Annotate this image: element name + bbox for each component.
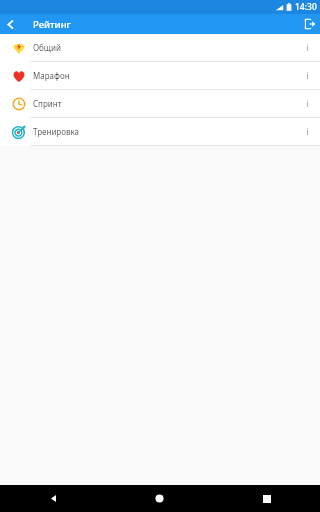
- button[interactable]: Тренировка: [0, 118, 320, 146]
- staticText: i: [306, 42, 309, 54]
- staticText: Рейтинг: [33, 18, 71, 31]
- staticText: Тренировка: [33, 126, 80, 137]
- button[interactable]: Info: [298, 121, 316, 143]
- button[interactable]: Марафон: [0, 62, 320, 90]
- button[interactable]: Log out: [300, 14, 320, 34]
- button[interactable]: Info: [298, 37, 316, 59]
- button[interactable]: Back: [0, 485, 106, 512]
- button[interactable]: Recent apps: [213, 485, 320, 512]
- staticText: i: [306, 70, 309, 82]
- staticText: 14:30: [295, 1, 317, 13]
- button[interactable]: Спринт: [0, 90, 320, 118]
- button[interactable]: Home: [106, 485, 213, 512]
- staticText: i: [306, 126, 309, 138]
- button[interactable]: Общий: [0, 34, 320, 62]
- staticText: Марафон: [33, 70, 70, 81]
- staticText: Спринт: [33, 98, 62, 109]
- button[interactable]: Info: [298, 65, 316, 87]
- staticText: Общий: [33, 42, 61, 53]
- button[interactable]: Back: [0, 14, 20, 34]
- staticText: i: [306, 98, 309, 110]
- button[interactable]: Info: [298, 93, 316, 115]
